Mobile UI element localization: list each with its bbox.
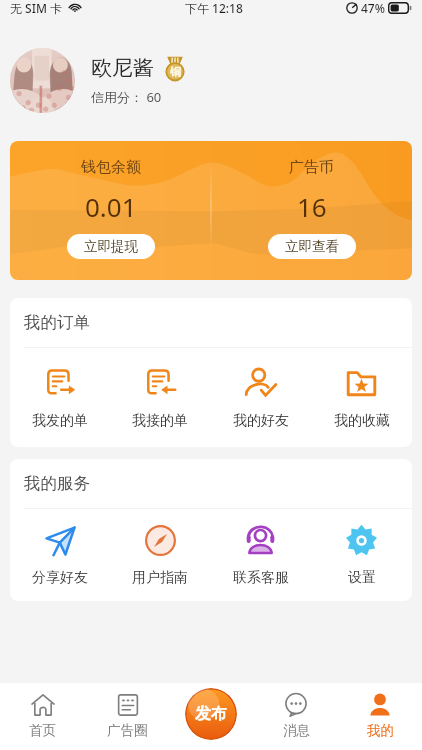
staticText: 设置 — [348, 569, 376, 587]
staticText: 广告圈 — [107, 722, 148, 739]
button[interactable]: 我的好友 — [210, 348, 311, 447]
staticText: 47% — [361, 0, 385, 16]
staticText: 立即查看 — [285, 238, 339, 255]
button[interactable]: 立即提现 — [67, 234, 155, 259]
staticText: 我的好友 — [233, 412, 289, 430]
staticText: 下午 12:18 — [185, 0, 243, 16]
staticText: 我的收藏 — [334, 412, 390, 430]
staticText: 首页 — [29, 722, 56, 739]
staticText: 无 SIM 卡 — [10, 0, 63, 16]
button[interactable]: 我的收藏 — [311, 348, 412, 447]
button[interactable]: 我发的单 — [10, 348, 110, 447]
button[interactable]: 我的 — [338, 683, 422, 750]
button[interactable]: 首页 — [0, 683, 85, 750]
button[interactable]: 联系客服 — [210, 509, 311, 601]
staticText: 欧尼酱 — [91, 55, 154, 81]
button[interactable]: 分享好友 — [10, 509, 110, 601]
button[interactable]: 设置 — [311, 509, 412, 601]
staticText: 我的 — [367, 722, 394, 739]
staticText: 0.01 — [85, 189, 137, 224]
button[interactable]: 发布 — [185, 688, 237, 740]
button[interactable]: 用户指南 — [110, 509, 210, 601]
button[interactable]: 我接的单 — [110, 348, 210, 447]
staticText: 16 — [297, 189, 327, 224]
staticText: 发布 — [195, 704, 227, 724]
staticText: 我的订单 — [24, 312, 90, 333]
button[interactable]: 消息 — [254, 683, 338, 750]
button[interactable]: 广告圈 — [85, 683, 170, 750]
staticText: 信用分： 60 — [91, 88, 162, 106]
staticText: 铜 — [170, 65, 181, 79]
staticText: 我的服务 — [24, 473, 90, 494]
staticText: 广告币 — [289, 158, 334, 177]
staticText: 我发的单 — [32, 412, 88, 430]
staticText: 钱包余额 — [81, 158, 141, 177]
staticText: 我接的单 — [132, 412, 188, 430]
button[interactable]: Profile avatar — [10, 48, 75, 113]
staticText: 立即提现 — [84, 238, 138, 255]
button[interactable]: 立即查看 — [268, 234, 356, 259]
staticText: 用户指南 — [132, 569, 188, 587]
staticText: 消息 — [283, 722, 310, 739]
staticText: 联系客服 — [233, 569, 289, 587]
staticText: 分享好友 — [32, 569, 88, 587]
